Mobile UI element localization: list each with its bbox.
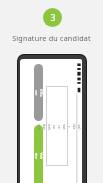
staticText: Signature du candidat bbox=[12, 33, 91, 43]
button[interactable]: 3 bbox=[43, 8, 62, 27]
staticText: Effacer bbox=[34, 88, 43, 97]
staticText: 3 bbox=[50, 12, 56, 24]
staticText: Signez pour valider votre candidature bbox=[37, 124, 82, 130]
staticText: Valider bbox=[34, 151, 43, 160]
button[interactable]: Zone de signature bbox=[46, 86, 68, 166]
button[interactable]: Effacer bbox=[34, 64, 43, 121]
button[interactable]: Valider bbox=[34, 125, 43, 183]
